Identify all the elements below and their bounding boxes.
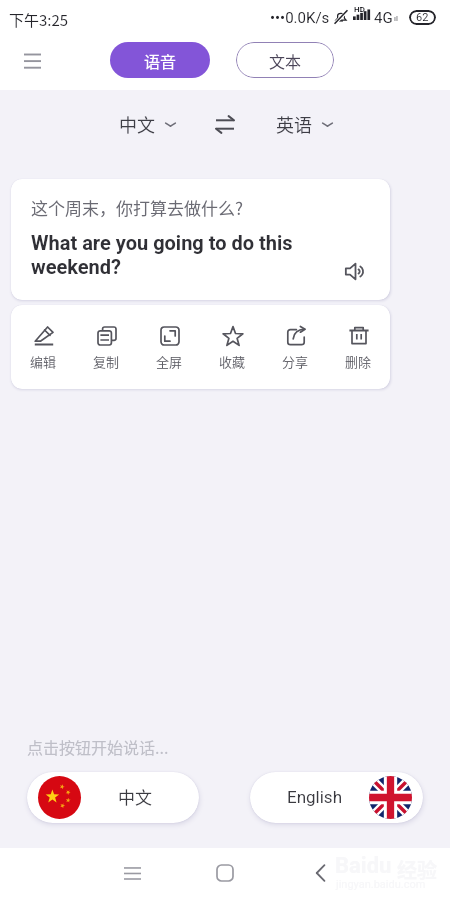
staticText: 全屏 — [156, 352, 183, 371]
button[interactable]: Back — [298, 851, 342, 895]
button[interactable]: 英语 — [270, 105, 339, 143]
staticText: English — [287, 787, 343, 807]
staticText: 中文 — [118, 784, 152, 809]
button[interactable]: 全屏 — [146, 322, 193, 375]
staticText: jingyan.baidu.com — [336, 878, 426, 891]
staticText: 收藏 — [219, 352, 246, 371]
button[interactable]: Menu — [14, 42, 50, 78]
button[interactable]: Swap languages — [210, 109, 240, 139]
staticText: 英语 — [276, 111, 312, 137]
button[interactable]: Recents — [110, 851, 154, 895]
staticText: 文本 — [269, 49, 302, 72]
button[interactable]: English — [250, 772, 423, 823]
staticText: •••0.0K/s — [270, 9, 330, 27]
staticText: HD — [354, 5, 365, 14]
staticText: ıl — [394, 14, 398, 23]
staticText: What are you going to do this weekend? — [31, 231, 316, 279]
button[interactable]: 删除 — [335, 322, 382, 375]
staticText: 分享 — [282, 352, 309, 371]
staticText: 经验 — [397, 855, 437, 884]
staticText: 复制 — [93, 352, 120, 371]
staticText: 这个周末，你打算去做什么? — [31, 195, 244, 220]
button[interactable]: Play audio — [336, 252, 374, 290]
staticText: 62 — [416, 11, 429, 24]
staticText: 中文 — [119, 111, 155, 137]
staticText: 语音 — [144, 49, 177, 72]
staticText: Baidu — [335, 853, 392, 879]
staticText: 4G — [374, 9, 393, 27]
staticText: 删除 — [345, 352, 372, 371]
button[interactable]: 这个周末，你打算去做什么? — [11, 179, 390, 300]
button[interactable]: 复制 — [83, 322, 130, 375]
button[interactable]: Home — [203, 851, 247, 895]
staticText: 点击按钮开始说话... — [27, 735, 169, 758]
button[interactable]: 文本 — [236, 42, 334, 78]
button[interactable]: 编辑 — [20, 322, 67, 375]
button[interactable]: 收藏 — [209, 322, 256, 375]
button[interactable]: 语音 — [110, 42, 210, 78]
staticText: 下午3:25 — [9, 9, 69, 31]
staticText: 编辑 — [30, 352, 57, 371]
button[interactable]: 中文 — [113, 105, 182, 143]
button[interactable]: 中文 — [27, 772, 199, 823]
button[interactable]: 分享 — [272, 322, 319, 375]
